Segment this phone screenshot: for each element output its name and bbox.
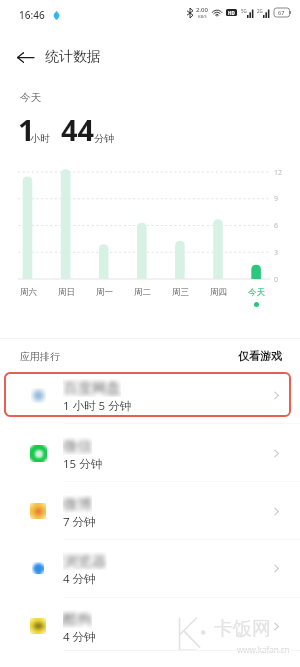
staticText: 微信 (63, 437, 92, 455)
button[interactable]: Back (11, 43, 39, 71)
staticText: 1 小时 5 分钟 (63, 398, 132, 414)
button[interactable]: 微博 (0, 482, 300, 540)
staticText: 3 (274, 248, 279, 258)
staticText: 浏览器 (63, 552, 107, 570)
staticText: 2G (257, 8, 263, 14)
button[interactable]: 微信 (0, 424, 300, 482)
staticText: www.kafan.cn (237, 644, 290, 655)
staticText: 44 (61, 110, 95, 149)
staticText: 67 (278, 9, 285, 16)
button[interactable]: 仅看游戏 (238, 349, 282, 363)
staticText: 9 (274, 194, 279, 204)
staticText: 仅看游戏 (238, 349, 282, 363)
staticText: 15 分钟 (63, 456, 103, 472)
staticText: 小时 (30, 132, 50, 145)
button[interactable]: 百度网盘 (0, 366, 300, 424)
staticText: 4 分钟 (63, 571, 96, 587)
staticText: 周三 (172, 287, 189, 298)
staticText: 周六 (20, 287, 37, 298)
staticText: 今天 (20, 91, 41, 104)
staticText: 周一 (96, 287, 113, 298)
staticText: 周四 (210, 287, 227, 298)
staticText: 周日 (58, 287, 75, 298)
staticText: 微博 (63, 495, 92, 513)
staticText: 应用排行 (20, 350, 60, 363)
staticText: 分钟 (94, 132, 114, 145)
staticText: 2.00 (196, 6, 208, 14)
staticText: KB/S (198, 14, 207, 19)
staticText: 统计数据 (45, 48, 101, 66)
staticText: 12 (274, 168, 283, 178)
staticText: 酷狗 (63, 610, 92, 628)
staticText: 16:46 (19, 8, 45, 22)
staticText: 卡饭网 (214, 617, 271, 641)
staticText: 周二 (134, 287, 151, 298)
staticText: 1 (18, 110, 35, 149)
staticText: 4 分钟 (63, 629, 96, 645)
staticText: 今天 (248, 287, 265, 298)
button[interactable]: 浏览器 (0, 539, 300, 597)
staticText: 0 (274, 275, 279, 285)
button[interactable]: 酷狗 (0, 597, 300, 655)
staticText: 7 分钟 (63, 514, 96, 530)
staticText: 5G (241, 8, 247, 14)
staticText: 百度网盘 (63, 379, 121, 397)
button[interactable] (4, 372, 291, 417)
staticText: 6 (274, 221, 279, 231)
staticText: HD (228, 10, 235, 16)
